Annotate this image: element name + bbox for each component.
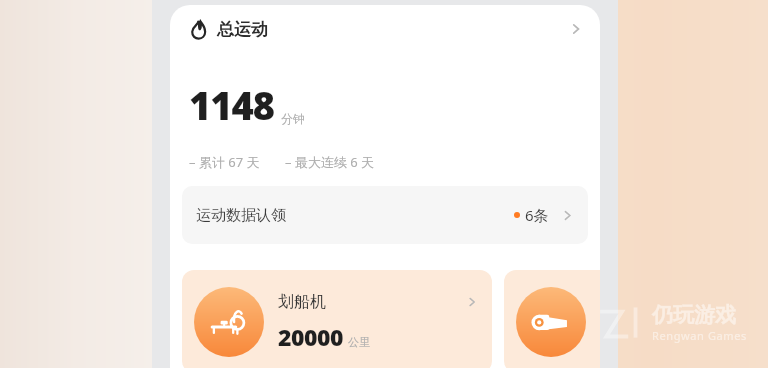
staticText: 20000 xyxy=(278,321,343,352)
staticText: 运动数据认领 xyxy=(196,206,286,225)
button[interactable]: 划船机 xyxy=(182,270,492,368)
other: More xyxy=(569,22,583,36)
staticText: 总运动 xyxy=(217,19,268,40)
staticText: – 最大连续 6 天 xyxy=(285,153,375,171)
button[interactable]: 运动数据认领 xyxy=(182,186,588,244)
button[interactable] xyxy=(504,270,600,368)
staticText: 公里 xyxy=(348,335,370,349)
staticText: – 累计 67 天 xyxy=(189,153,260,171)
button[interactable]: 总运动 xyxy=(170,5,600,53)
staticText: 仍玩游戏 xyxy=(652,302,736,328)
staticText: 6条 xyxy=(525,205,549,225)
staticText: 划船机 xyxy=(278,292,326,312)
staticText: 分钟 xyxy=(281,111,305,126)
staticText: Rengwan Games xyxy=(652,328,747,343)
staticText: 1148 xyxy=(189,79,275,131)
